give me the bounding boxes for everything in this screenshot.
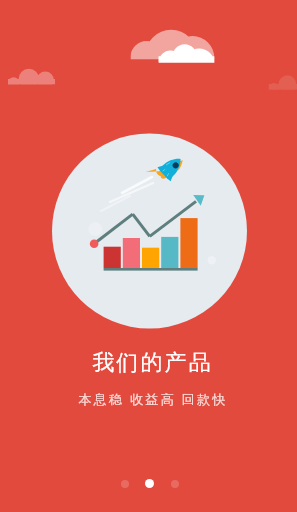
button[interactable]: Page 2 [137,471,162,496]
button[interactable]: Page 3 [162,471,187,496]
button[interactable]: Page 1 [112,471,137,496]
staticText: 我们的产品 [92,349,213,377]
staticText: 本息稳 收益高 回款快 [78,390,228,408]
